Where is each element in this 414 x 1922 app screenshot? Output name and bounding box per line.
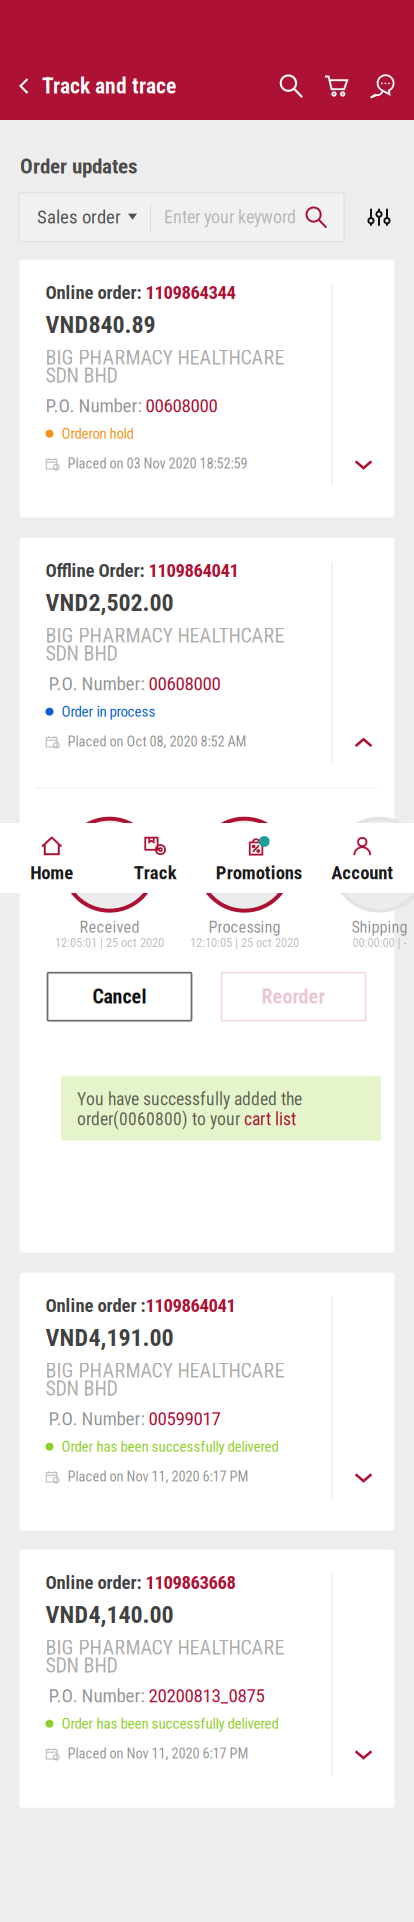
staticText: Home	[30, 862, 73, 884]
button[interactable]: Reorder	[221, 973, 365, 1021]
staticText: VND4,140.00	[45, 1601, 173, 1629]
staticText: VND4,191.00	[45, 1324, 173, 1352]
staticText: BIG PHARMACY HEALTHCARE	[45, 1636, 284, 1659]
button[interactable]: Back	[0, 69, 42, 103]
staticText: 00599017	[148, 1407, 220, 1430]
staticText: P.O. Number:	[48, 1684, 148, 1707]
staticText: Online order :	[45, 1295, 145, 1317]
staticText: 12:05:01 | 25 oct 2020	[55, 935, 164, 950]
staticText: Sales order	[37, 206, 121, 228]
staticText: VND840.89	[45, 311, 155, 339]
button[interactable]: Online order:	[19, 260, 394, 518]
staticText: Order has been successfully delivered	[61, 1438, 278, 1455]
staticText: 1109863668	[145, 1572, 235, 1594]
staticText: SDN BHD	[45, 1377, 117, 1400]
staticText: BIG PHARMACY HEALTHCARE	[45, 346, 284, 369]
staticText: BIG PHARMACY HEALTHCARE	[45, 1359, 284, 1382]
staticText: P.O. Number:	[48, 672, 148, 695]
button[interactable]: Account	[310, 823, 414, 893]
staticText: Placed on Nov 11, 2020 6:17 PM	[67, 1745, 248, 1762]
staticText: BIG PHARMACY HEALTHCARE	[45, 624, 284, 647]
staticText: Track	[134, 862, 177, 884]
staticText: Placed on Nov 11, 2020 6:17 PM	[67, 1468, 248, 1485]
staticText: 12:10:05 | 25 oct 2020	[190, 935, 299, 950]
staticText: Enter your keyword	[164, 207, 296, 228]
staticText: Shipping	[351, 918, 407, 937]
staticText: Processing	[208, 918, 280, 937]
staticText: SDN BHD	[45, 364, 117, 387]
button[interactable]: Offline Order:	[19, 538, 394, 788]
staticText: P.O. Number:	[45, 394, 145, 417]
button[interactable]: Search	[278, 69, 304, 103]
staticText: 00608000	[148, 672, 220, 695]
staticText: Cancel	[92, 985, 146, 1008]
button[interactable]: Track	[103, 823, 207, 893]
staticText: P.O. Number:	[48, 1407, 148, 1430]
staticText: Orderon hold	[61, 425, 133, 442]
button[interactable]: Search orders	[304, 205, 344, 229]
button[interactable]: Online order:	[19, 1550, 394, 1808]
staticText: Order updates	[20, 154, 138, 179]
staticText: 1109864344	[145, 282, 235, 304]
staticText: Received	[79, 918, 139, 937]
button[interactable]: Home	[0, 823, 103, 893]
staticText: Order in process	[61, 703, 155, 720]
button[interactable]: Messages	[369, 69, 396, 103]
staticText: You have successfully added the	[77, 1089, 302, 1109]
staticText: Placed on Oct 08, 2020 8:52 AM	[67, 733, 246, 750]
staticText: SDN BHD	[45, 642, 117, 665]
staticText: 00608000	[145, 394, 217, 417]
button[interactable]: Cart	[324, 69, 349, 103]
staticText: Placed on 03 Nov 2020 18:52:59	[67, 455, 247, 472]
staticText: order(0060800) to your	[77, 1109, 244, 1129]
button[interactable]: Filter	[354, 208, 404, 227]
staticText: Online order:	[45, 282, 145, 304]
button[interactable]: Promotions	[207, 823, 310, 893]
staticText: 1109864041	[148, 560, 238, 582]
staticText: Online order:	[45, 1572, 145, 1594]
button[interactable]: Online order :	[19, 1273, 394, 1531]
staticText: Track and trace	[42, 73, 176, 99]
staticText: 20200813_0875	[148, 1684, 264, 1707]
button[interactable]: cart list	[244, 1109, 296, 1129]
staticText: Promotions	[216, 862, 302, 884]
staticText: Offline Order:	[45, 560, 148, 582]
staticText: Order has been successfully delivered	[61, 1715, 278, 1732]
staticText: Reorder	[261, 985, 325, 1008]
staticText: VND2,502.00	[45, 589, 173, 617]
staticText: 1109864041	[145, 1295, 235, 1317]
staticText: cart list	[244, 1109, 296, 1129]
staticText: 00:00:00 | -	[352, 935, 406, 950]
button[interactable]: Sales order	[19, 194, 150, 241]
staticText: Account	[331, 862, 393, 884]
button[interactable]: Cancel	[47, 973, 191, 1021]
staticText: SDN BHD	[45, 1654, 117, 1677]
